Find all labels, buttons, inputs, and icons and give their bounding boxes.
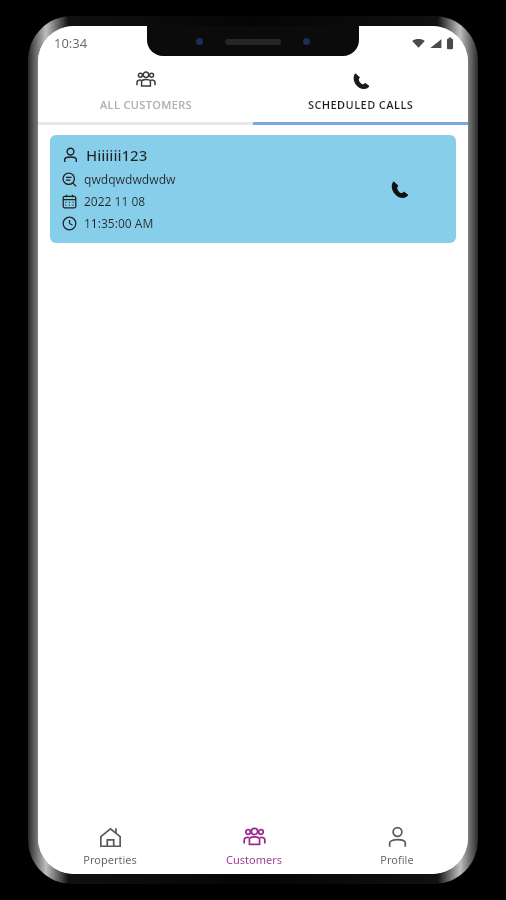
- staticText: Profile: [380, 852, 414, 867]
- staticText: Customers: [226, 852, 282, 867]
- button[interactable]: Properties: [38, 818, 182, 874]
- staticText: 11:35:00 AM: [84, 215, 154, 231]
- staticText: 2022 11 08: [84, 193, 146, 209]
- button[interactable]: Profile: [325, 818, 468, 874]
- button[interactable]: Call: [382, 171, 416, 205]
- staticText: Properties: [83, 852, 137, 867]
- button[interactable]: SCHEDULED CALLS: [253, 60, 468, 122]
- staticText: SCHEDULED CALLS: [308, 97, 414, 112]
- staticText: qwdqwdwdwdw: [84, 171, 176, 187]
- button[interactable]: ALL CUSTOMERS: [38, 60, 253, 122]
- staticText: ALL CUSTOMERS: [100, 97, 192, 112]
- staticText: 10:34: [54, 34, 88, 52]
- button[interactable]: Hiiiiii123: [50, 135, 456, 243]
- button[interactable]: Customers: [182, 818, 325, 874]
- staticText: Hiiiiii123: [86, 145, 148, 165]
